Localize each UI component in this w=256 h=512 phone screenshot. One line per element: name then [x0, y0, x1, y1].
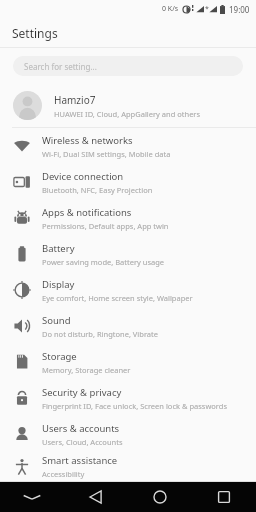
staticText: Storage [42, 350, 77, 363]
staticText: Fingerprint ID, Face unlock, Screen lock… [42, 401, 227, 411]
staticText: Wireless & networks [42, 134, 133, 147]
button[interactable]: Hamzio7 [0, 84, 256, 127]
button[interactable]: Storage [0, 344, 256, 380]
staticText: 0 K/s [162, 4, 179, 14]
staticText: Smart assistance [42, 454, 118, 467]
staticText: Eye comfort, Home screen style, Wallpape… [42, 293, 193, 303]
staticText: Wi-Fi, Dual SIM settings, Mobile data [42, 149, 171, 159]
button[interactable]: Apps & notifications [0, 200, 256, 236]
staticText: Bluetooth, NFC, Easy Projection [42, 185, 153, 195]
button[interactable]: Back [64, 482, 128, 512]
staticText: Users & accounts [42, 422, 120, 435]
staticText: Hamzio7 [54, 93, 96, 107]
staticText: Accessibility [42, 469, 85, 479]
staticText: HUAWEI ID, Cloud, AppGallery and others [54, 109, 201, 119]
button[interactable]: Home [128, 482, 192, 512]
button[interactable]: Sound [0, 308, 256, 344]
staticText: Search for setting... [24, 61, 97, 72]
staticText: Power saving mode, Battery usage [42, 257, 165, 267]
button[interactable]: Battery [0, 236, 256, 272]
staticText: Permissions, Default apps, App twin [42, 221, 169, 231]
staticText: Security & privacy [42, 386, 122, 399]
button[interactable]: Users & accounts [0, 416, 256, 452]
button[interactable]: Display [0, 272, 256, 308]
staticText: Do not disturb, Ringtone, Vibrate [42, 329, 159, 339]
button[interactable]: Search for setting... [13, 56, 243, 76]
staticText: Settings [12, 25, 58, 41]
staticText: Sound [42, 314, 71, 327]
button[interactable]: Hide keyboard [0, 482, 64, 512]
staticText: Apps & notifications [42, 206, 132, 219]
button[interactable]: Recents [192, 482, 256, 512]
staticText: 19:00 [229, 4, 250, 15]
staticText: Battery [42, 242, 75, 255]
staticText: * [205, 4, 209, 14]
button[interactable]: Device connection [0, 164, 256, 200]
button[interactable]: Security & privacy [0, 380, 256, 416]
button[interactable]: Wireless & networks [0, 128, 256, 164]
staticText: Display [42, 278, 75, 291]
staticText: Users, Cloud, Accounts [42, 437, 123, 447]
staticText: Memory, Storage cleaner [42, 365, 131, 375]
button[interactable]: Smart assistance [0, 452, 256, 481]
staticText: Device connection [42, 170, 124, 183]
